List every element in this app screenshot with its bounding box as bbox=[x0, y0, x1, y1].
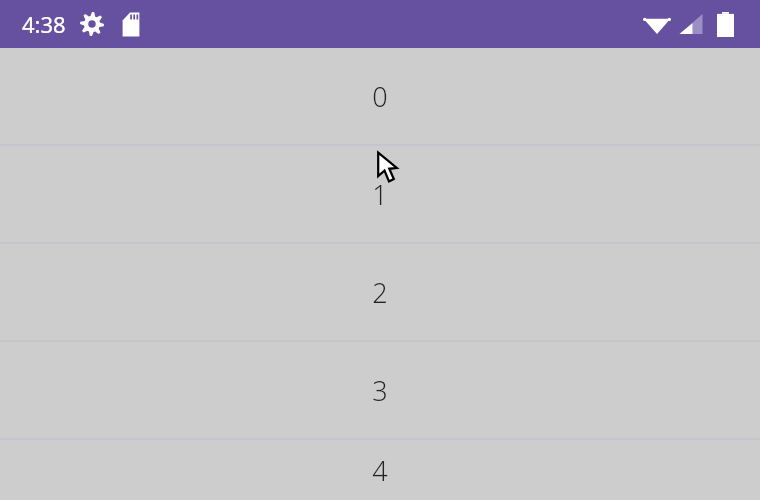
button[interactable]: 3 bbox=[0, 342, 760, 438]
button[interactable]: 4 bbox=[0, 440, 760, 500]
staticText: 1 bbox=[372, 176, 388, 213]
button[interactable]: 0 bbox=[0, 48, 760, 144]
staticText: 3 bbox=[372, 372, 388, 409]
other: Signal strength bbox=[679, 13, 703, 35]
other: Battery bbox=[717, 12, 734, 37]
other: Settings bbox=[80, 12, 104, 36]
other: Wi-Fi bbox=[643, 13, 671, 35]
staticText: 4:38 bbox=[22, 9, 66, 39]
other: SD card bbox=[121, 12, 141, 37]
staticText: 2 bbox=[372, 274, 388, 311]
button[interactable]: 1 bbox=[0, 146, 760, 242]
staticText: 0 bbox=[372, 78, 388, 115]
button[interactable]: 2 bbox=[0, 244, 760, 340]
staticText: 4 bbox=[372, 452, 388, 489]
